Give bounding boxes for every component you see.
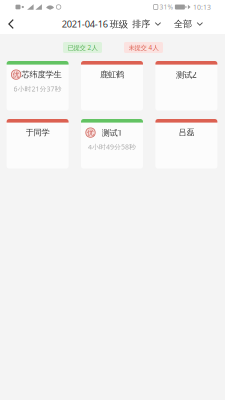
button[interactable]: 全部: [172, 14, 205, 34]
staticText: 优: [13, 70, 20, 79]
button[interactable]: 返回: [0, 14, 20, 34]
button[interactable]: 吕磊: [155, 119, 217, 168]
button[interactable]: 测试2: [155, 61, 217, 110]
staticText: 2021-04-16 班级: [62, 18, 128, 30]
staticText: 4小时49分58秒: [88, 142, 136, 151]
staticText: 测试1: [101, 127, 122, 138]
button[interactable]: 排序: [130, 14, 163, 34]
button[interactable]: 测试1: [81, 119, 143, 168]
staticText: 10:13: [193, 2, 211, 12]
button[interactable]: 已提交 2人: [63, 42, 102, 53]
staticText: 已提交 2人: [67, 43, 97, 52]
button[interactable]: 未提交 4人: [124, 42, 163, 53]
staticText: 优: [87, 128, 94, 137]
staticText: 31%: [159, 2, 173, 12]
staticText: 测试2: [176, 69, 197, 80]
staticText: 未提交 4人: [128, 43, 158, 52]
staticText: 6小时21分37秒: [14, 84, 62, 93]
staticText: 吕磊: [178, 127, 194, 138]
staticText: 鹿虹鹤: [100, 69, 124, 80]
staticText: 排序: [132, 18, 150, 30]
button[interactable]: 于同学: [7, 119, 69, 168]
staticText: 于同学: [26, 127, 50, 138]
staticText: 全部: [174, 18, 192, 30]
button[interactable]: 中芯纬度学生: [7, 61, 69, 110]
button[interactable]: 鹿虹鹤: [81, 61, 143, 110]
staticText: 中芯纬度学生: [14, 69, 62, 80]
